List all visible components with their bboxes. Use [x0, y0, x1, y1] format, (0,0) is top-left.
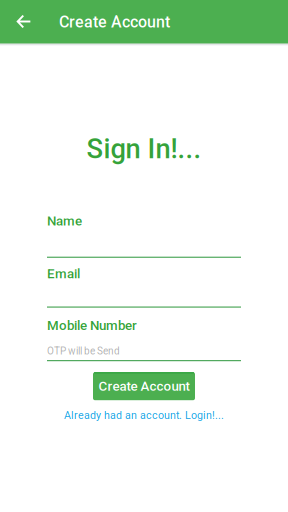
button[interactable]: Create Account: [93, 372, 195, 400]
button[interactable]: Back: [0, 0, 45, 42]
staticText: Name: [47, 213, 82, 229]
staticText: Create Account: [98, 378, 189, 394]
button[interactable]: Already had an account. Login!...: [64, 409, 224, 422]
staticText: Email: [47, 266, 80, 281]
staticText: Sign In!...: [86, 133, 201, 165]
staticText: Create Account: [59, 13, 170, 31]
staticText: Already had an account. Login!...: [64, 409, 224, 422]
staticText: Mobile Number: [47, 318, 137, 333]
staticText: OTP will be Send: [47, 345, 120, 357]
